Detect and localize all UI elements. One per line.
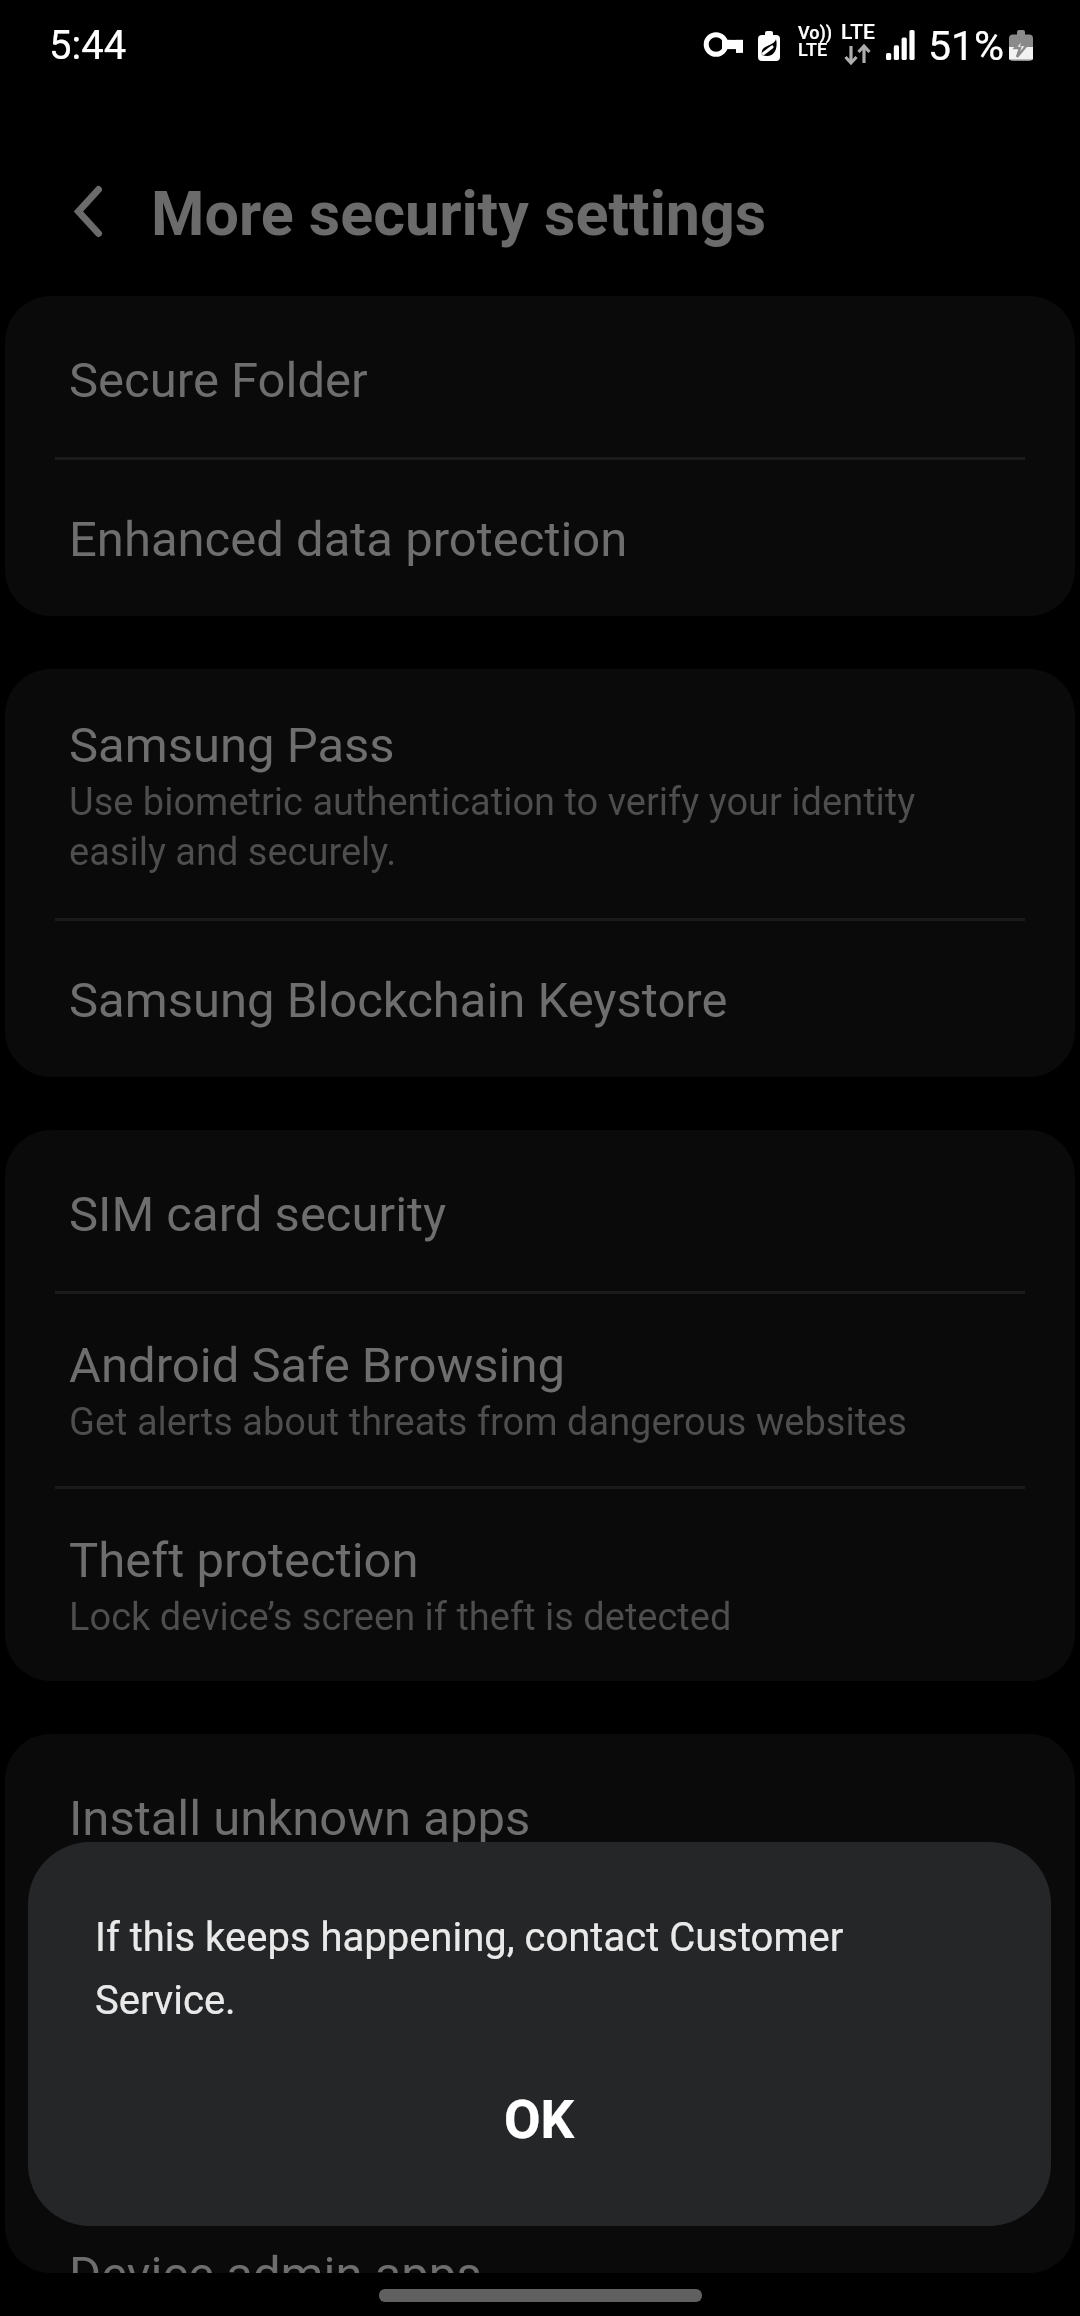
button[interactable]: Secure Folder [5,301,1075,457]
button[interactable]: SIM card security [5,1135,1075,1291]
staticText: Lock device’s screen if theft is detecte… [69,1590,732,1640]
staticText: LTE [841,22,875,44]
staticText: Use biometric authentication to verify y… [69,775,1019,875]
staticText: Enhanced data protection [69,507,628,569]
button[interactable]: Enhanced data protection [5,460,1075,616]
staticText: Samsung Blockchain Keystore [69,968,728,1030]
staticText: 51% [928,22,1005,70]
staticText: Samsung Pass [69,713,395,775]
staticText: If this keeps happening, contact Custome… [95,1901,979,2027]
staticText: Get alerts about threats from dangerous … [69,1395,907,1445]
staticText: Android Safe Browsing [69,1333,565,1395]
button[interactable]: Encrypt or decrypt SD card [5,1898,1075,2054]
staticText: Vo)) [798,24,833,43]
button[interactable]: Theft protection [5,1489,1075,1681]
staticText: LTE [798,41,828,60]
button[interactable]: Samsung Pass [5,674,1075,918]
button[interactable]: OK [28,2013,1051,2226]
staticText: OK [504,2089,575,2151]
staticText: More security settings [151,178,767,250]
staticText: Secure Folder [69,348,368,410]
button[interactable]: Navigate up [20,143,156,279]
button[interactable]: Device admin apps [5,2195,1075,2273]
button[interactable]: Android Safe Browsing [5,1294,1075,1486]
staticText: SIM card security [69,1182,447,1244]
button[interactable]: Samsung Blockchain Keystore [5,921,1075,1077]
staticText: 5:44 [49,22,127,69]
staticText: Encrypt or decrypt SD card [69,1945,647,2007]
staticText: Install unknown apps [69,1786,531,1848]
button[interactable]: Install unknown apps [5,1739,1075,1895]
staticText: Theft protection [69,1528,419,1590]
staticText: Device admin apps [69,2242,482,2273]
